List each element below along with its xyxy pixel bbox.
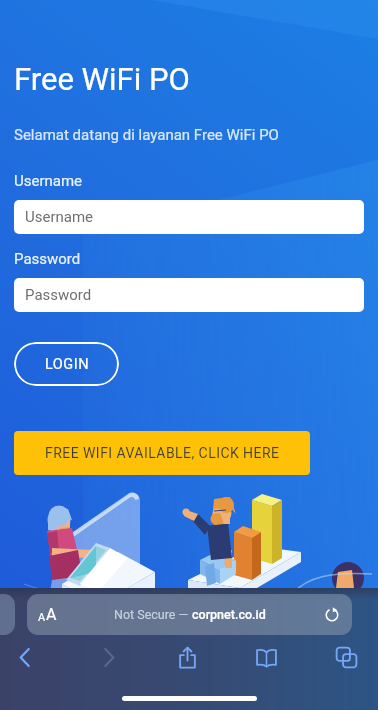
button[interactable]: Reload page (320, 603, 344, 627)
button[interactable]: Username (14, 200, 364, 234)
button[interactable]: LOGIN (14, 342, 119, 386)
button[interactable]: Forward (89, 639, 127, 675)
staticText: Free WiFi PO (14, 61, 190, 97)
staticText: A (46, 605, 57, 624)
staticText: Selamat datang di layanan Free WiFi PO (14, 126, 279, 144)
button[interactable]: Previous tab (0, 594, 15, 635)
button[interactable]: FREE WIFI AVAILABLE, CLICK HERE (14, 431, 310, 475)
staticText: LOGIN (45, 356, 89, 373)
button[interactable]: Tabs (327, 639, 365, 675)
button[interactable]: A (27, 594, 352, 635)
button[interactable]: Back (6, 639, 44, 675)
staticText: Username (25, 208, 94, 226)
staticText: Password (14, 250, 81, 268)
button[interactable]: Bookmarks (247, 639, 285, 675)
staticText: Password (25, 286, 92, 304)
staticText: Username (14, 172, 83, 190)
button[interactable]: Password (14, 278, 364, 312)
staticText: corpnet.co.id (192, 607, 266, 622)
staticText: Not Secure — (114, 607, 192, 622)
button[interactable]: Share (168, 639, 206, 675)
staticText: FREE WIFI AVAILABLE, CLICK HERE (45, 445, 280, 461)
staticText: A (38, 611, 46, 624)
